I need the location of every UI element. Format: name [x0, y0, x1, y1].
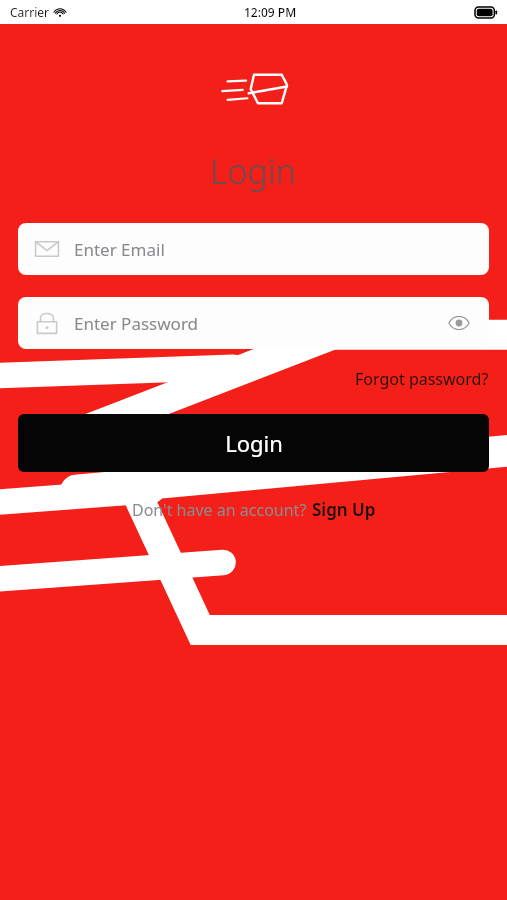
button[interactable]: Forgot password?: [355, 366, 489, 392]
button[interactable]: Show password: [445, 309, 473, 337]
button[interactable]: Login: [18, 414, 489, 472]
staticText: Login: [210, 148, 297, 194]
staticText: Sign Up: [312, 498, 376, 521]
staticText: Carrier: [10, 4, 50, 20]
staticText: Login: [225, 428, 283, 458]
staticText: Enter Email: [74, 238, 165, 261]
button[interactable]: Email: [18, 223, 489, 275]
button[interactable]: Sign Up: [312, 498, 376, 521]
other: Password: [34, 310, 60, 336]
other: Email: [34, 236, 60, 262]
button[interactable]: Password: [18, 297, 489, 349]
staticText: Don't have an account?: [132, 499, 307, 521]
staticText: 12:09 PM: [244, 4, 297, 20]
staticText: Forgot password?: [355, 368, 489, 390]
staticText: Enter Password: [74, 312, 199, 335]
